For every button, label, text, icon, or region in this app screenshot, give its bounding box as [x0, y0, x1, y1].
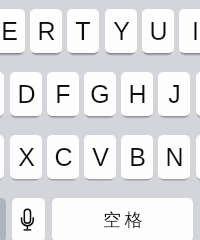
button[interactable]: D	[10, 72, 42, 116]
button[interactable]: I	[179, 9, 200, 53]
staticText: D	[17, 80, 36, 108]
staticText: T	[75, 17, 91, 45]
staticText: F	[55, 80, 71, 108]
staticText: B	[129, 143, 146, 171]
staticText: U	[149, 17, 168, 45]
button[interactable]: Switch keyboard	[0, 198, 6, 240]
button[interactable]: V	[84, 135, 116, 179]
staticText: G	[90, 80, 110, 108]
button[interactable]: K	[196, 72, 200, 116]
button[interactable]: E	[0, 9, 25, 53]
button[interactable]: C	[47, 135, 79, 179]
button[interactable]: Z	[0, 135, 4, 179]
staticText: I	[192, 17, 199, 45]
staticText: X	[18, 143, 35, 171]
button[interactable]: M	[196, 135, 200, 179]
staticText: Y	[113, 17, 130, 45]
staticText: V	[92, 143, 109, 171]
staticText: H	[128, 80, 147, 108]
staticText: N	[165, 143, 184, 171]
button[interactable]: Dictation	[12, 198, 45, 240]
button[interactable]: U	[142, 9, 174, 53]
button[interactable]: 空格	[52, 198, 193, 240]
button[interactable]: X	[10, 135, 42, 179]
staticText: 空格	[103, 209, 146, 232]
staticText: C	[54, 143, 73, 171]
staticText: R	[37, 17, 56, 45]
button[interactable]: Y	[105, 9, 137, 53]
button[interactable]: N	[158, 135, 190, 179]
staticText: J	[168, 80, 181, 108]
button[interactable]: S	[0, 72, 4, 116]
button[interactable]: J	[158, 72, 190, 116]
staticText: E	[1, 17, 18, 45]
button[interactable]: R	[30, 9, 62, 53]
button[interactable]: T	[67, 9, 99, 53]
button[interactable]: H	[121, 72, 153, 116]
button[interactable]: G	[84, 72, 116, 116]
button[interactable]: B	[121, 135, 153, 179]
button[interactable]: F	[47, 72, 79, 116]
